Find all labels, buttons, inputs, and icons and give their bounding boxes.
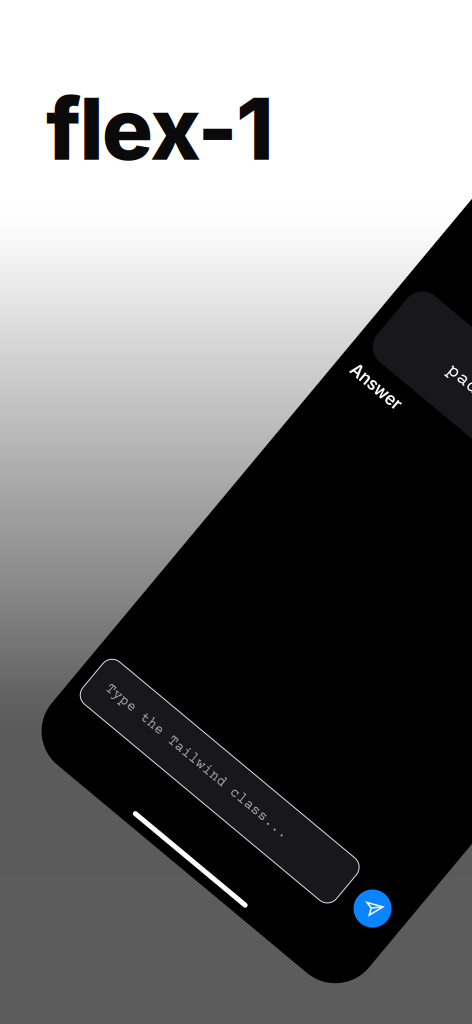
staticText: flex-1 (46, 77, 274, 180)
button[interactable]: Type the Tailwind class... (14, 749, 344, 804)
staticText: Type the Tailwind class... (32, 768, 266, 784)
